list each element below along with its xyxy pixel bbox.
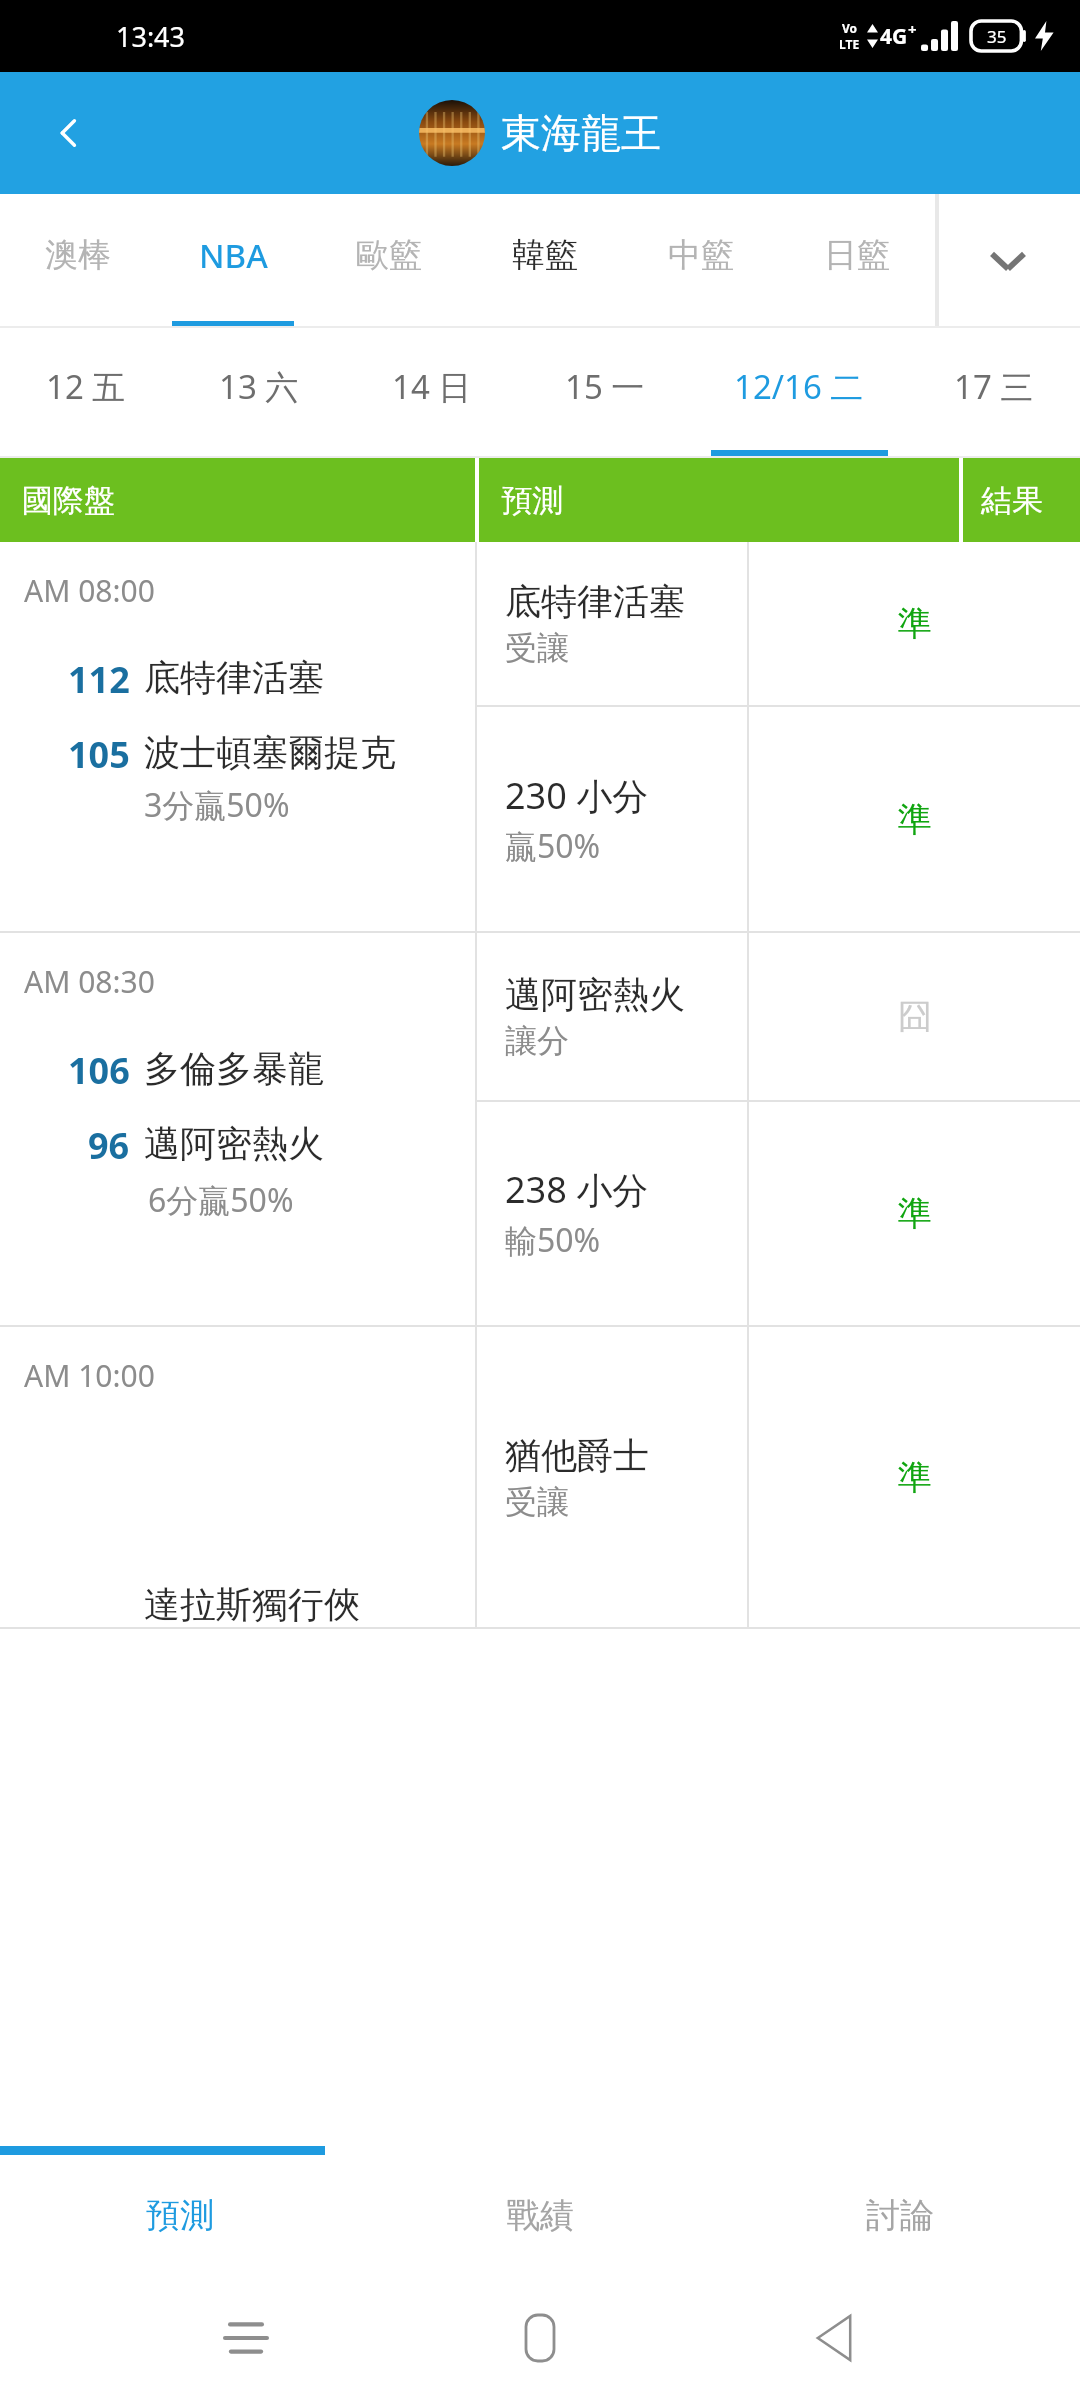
- staticText: 準: [898, 602, 932, 645]
- staticText: 猶他爵士: [505, 1433, 649, 1478]
- staticText: 讓分: [505, 1021, 569, 1061]
- staticText: 贏50%: [505, 824, 601, 868]
- staticText: AM 08:00: [24, 570, 155, 611]
- button[interactable]: 猶他爵士: [477, 1327, 747, 1627]
- staticText: LTE: [839, 36, 860, 52]
- staticText: 17 三: [954, 364, 1034, 409]
- button[interactable]: AM 10:00: [0, 1327, 475, 1627]
- staticText: 歐籃: [356, 234, 422, 276]
- button[interactable]: 東海龍王: [419, 100, 661, 166]
- button[interactable]: 12 五: [0, 328, 172, 458]
- staticText: 12/16 二: [734, 364, 864, 409]
- button[interactable]: 韓籃: [467, 194, 623, 328]
- button[interactable]: 戰績: [360, 2155, 720, 2275]
- staticText: 12 五: [46, 364, 126, 409]
- staticText: 邁阿密熱火: [505, 972, 685, 1017]
- staticText: 105: [68, 730, 130, 779]
- button[interactable]: 13 六: [172, 328, 345, 458]
- button[interactable]: 238 小分: [477, 1102, 747, 1325]
- button[interactable]: AM 08:30: [0, 933, 475, 1325]
- button[interactable]: 230 小分: [477, 707, 747, 931]
- button[interactable]: 討論: [720, 2155, 1080, 2275]
- staticText: 輸50%: [505, 1218, 601, 1262]
- staticText: 受讓: [505, 1482, 569, 1522]
- button[interactable]: AM 08:00: [0, 542, 475, 931]
- staticText: 13 六: [219, 364, 299, 409]
- button[interactable]: Recent apps: [198, 2290, 294, 2386]
- staticText: 15 一: [565, 364, 645, 409]
- staticText: 13:43: [116, 18, 186, 55]
- staticText: 戰績: [506, 2194, 574, 2237]
- staticText: 囧: [898, 995, 932, 1038]
- staticText: 日籃: [824, 234, 890, 276]
- staticText: Vo: [842, 20, 858, 36]
- staticText: 預測: [146, 2194, 214, 2237]
- button[interactable]: 澳棒: [0, 194, 155, 328]
- staticText: AM 08:30: [24, 961, 155, 1002]
- staticText: 波士頓塞爾提克: [144, 730, 475, 775]
- button[interactable]: 底特律活塞: [477, 542, 747, 705]
- button[interactable]: 準: [749, 1327, 1080, 1627]
- button[interactable]: Back: [28, 92, 110, 174]
- staticText: 14 日: [392, 364, 472, 409]
- staticText: 106: [68, 1046, 130, 1095]
- button[interactable]: 預測: [0, 2155, 360, 2275]
- staticText: 受讓: [505, 628, 569, 668]
- staticText: 討論: [866, 2194, 934, 2237]
- staticText: AM 10:00: [24, 1355, 155, 1396]
- staticText: 多倫多暴龍: [144, 1046, 324, 1091]
- button[interactable]: 準: [749, 707, 1080, 931]
- staticText: 中籃: [668, 234, 734, 276]
- staticText: 底特律活塞: [505, 579, 685, 624]
- button[interactable]: 歐籃: [311, 194, 467, 328]
- staticText: 澳棒: [45, 234, 111, 276]
- button[interactable]: 準: [749, 1102, 1080, 1325]
- staticText: 達拉斯獨行俠: [144, 1582, 360, 1627]
- staticText: 96: [88, 1121, 130, 1170]
- staticText: +: [908, 19, 917, 39]
- staticText: 230 小分: [505, 771, 649, 820]
- staticText: 準: [898, 1456, 932, 1499]
- staticText: 238 小分: [505, 1165, 649, 1214]
- button[interactable]: 12/16 二: [691, 328, 907, 458]
- button[interactable]: More categories: [972, 225, 1044, 297]
- button[interactable]: 邁阿密熱火: [477, 933, 747, 1100]
- button[interactable]: NBA: [155, 194, 311, 328]
- staticText: 邁阿密熱火: [144, 1121, 475, 1166]
- button[interactable]: Back: [786, 2290, 882, 2386]
- staticText: 6分贏50%: [148, 1178, 294, 1222]
- button[interactable]: 準: [749, 542, 1080, 705]
- button[interactable]: 15 一: [518, 328, 691, 458]
- button[interactable]: Home: [492, 2290, 588, 2386]
- staticText: 4G: [880, 22, 908, 51]
- button[interactable]: 中籃: [623, 194, 779, 328]
- staticText: 東海龍王: [501, 108, 661, 158]
- staticText: 國際盤: [22, 481, 115, 520]
- staticText: 底特律活塞: [144, 655, 324, 700]
- button[interactable]: 日籃: [779, 194, 935, 328]
- staticText: NBA: [199, 233, 268, 278]
- button[interactable]: 14 日: [345, 328, 518, 458]
- staticText: 3分贏50%: [144, 783, 290, 827]
- staticText: 112: [68, 655, 130, 704]
- staticText: 準: [898, 798, 932, 841]
- button[interactable]: 囧: [749, 933, 1080, 1100]
- staticText: 預測: [501, 481, 563, 520]
- staticText: 35: [987, 25, 1007, 48]
- staticText: 韓籃: [512, 234, 578, 276]
- staticText: 準: [898, 1192, 932, 1235]
- staticText: 結果: [981, 481, 1043, 520]
- button[interactable]: 17 三: [907, 328, 1080, 458]
